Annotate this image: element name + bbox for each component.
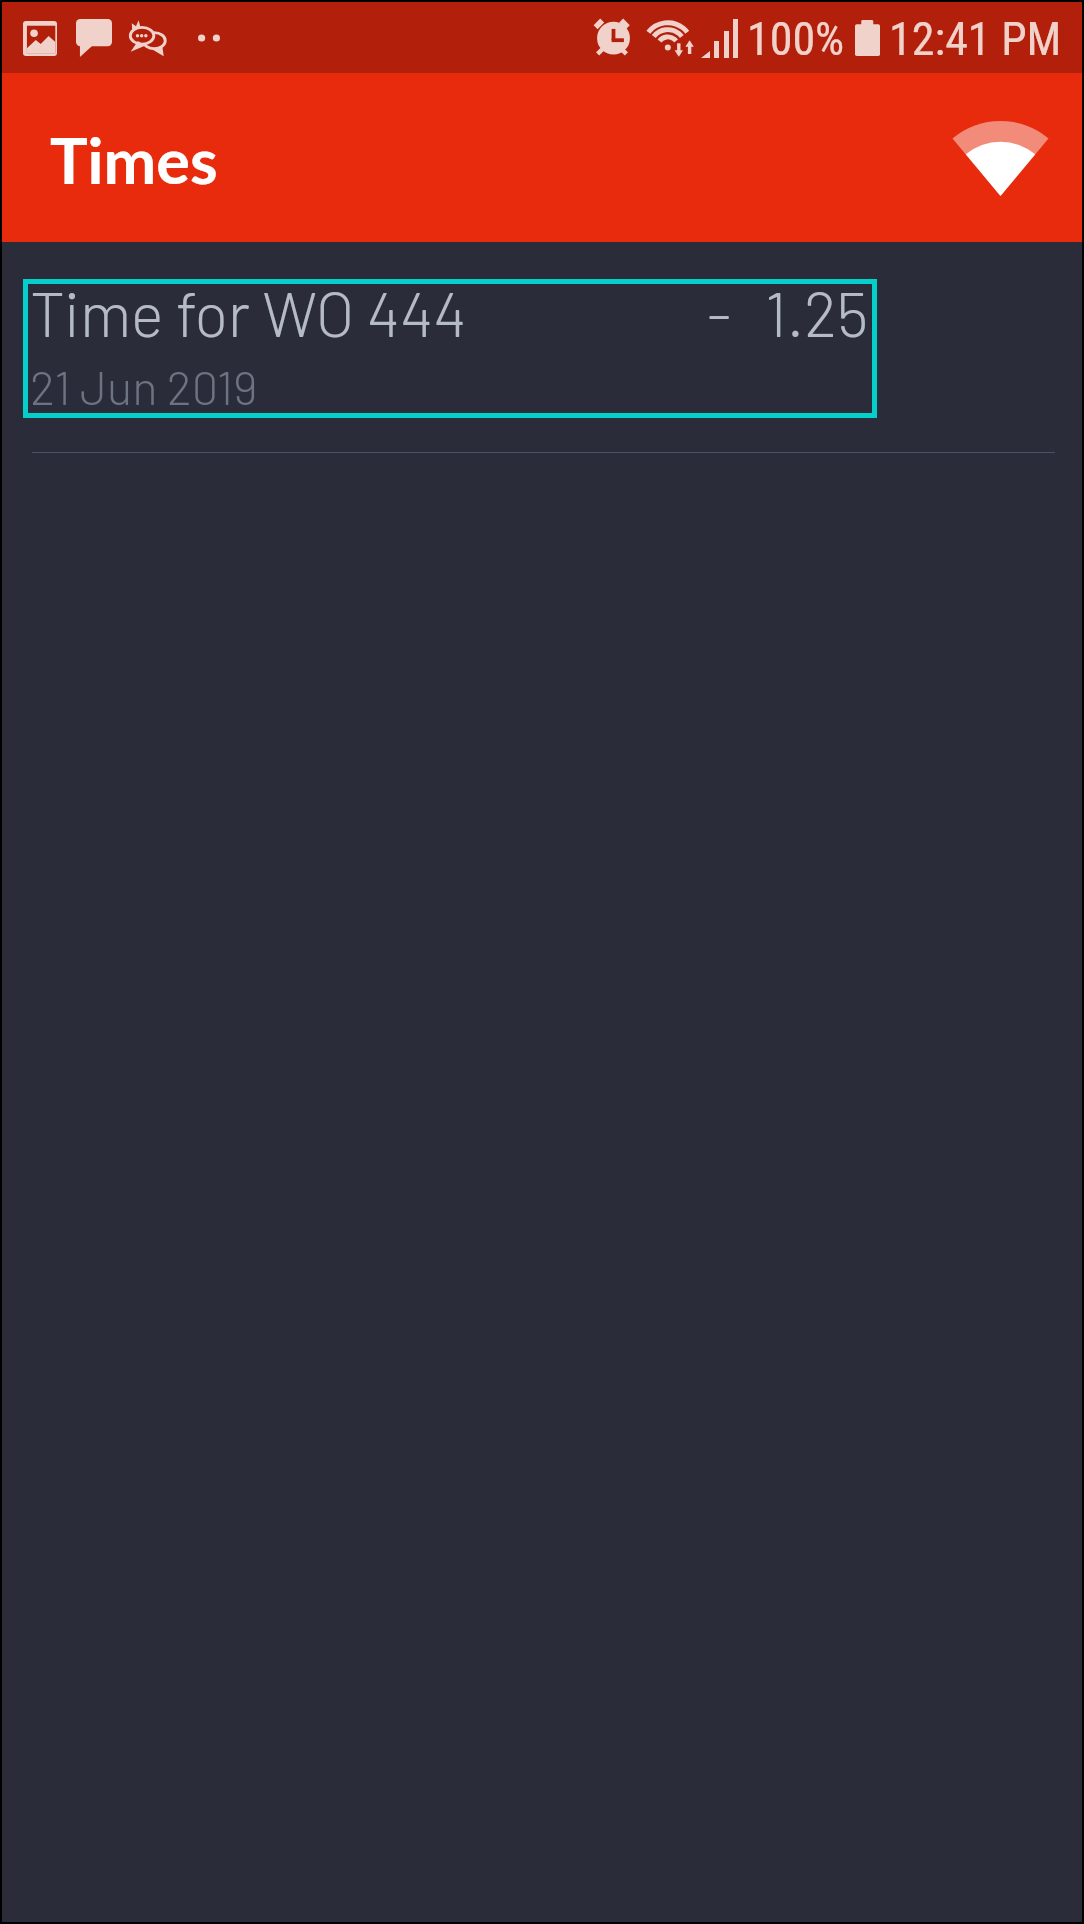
staticText: 100% [747, 12, 845, 66]
staticText: Times [50, 122, 218, 198]
staticText: 21 Jun 2019 [30, 358, 258, 414]
button[interactable]: Wi-Fi status [953, 121, 1048, 196]
staticText: - [707, 275, 732, 349]
staticText: 12:41 PM [889, 12, 1062, 66]
staticText: Time for WO 444 [30, 275, 467, 349]
button[interactable]: Time for WO 444 [23, 279, 877, 418]
staticText: 1.25 [765, 275, 869, 349]
